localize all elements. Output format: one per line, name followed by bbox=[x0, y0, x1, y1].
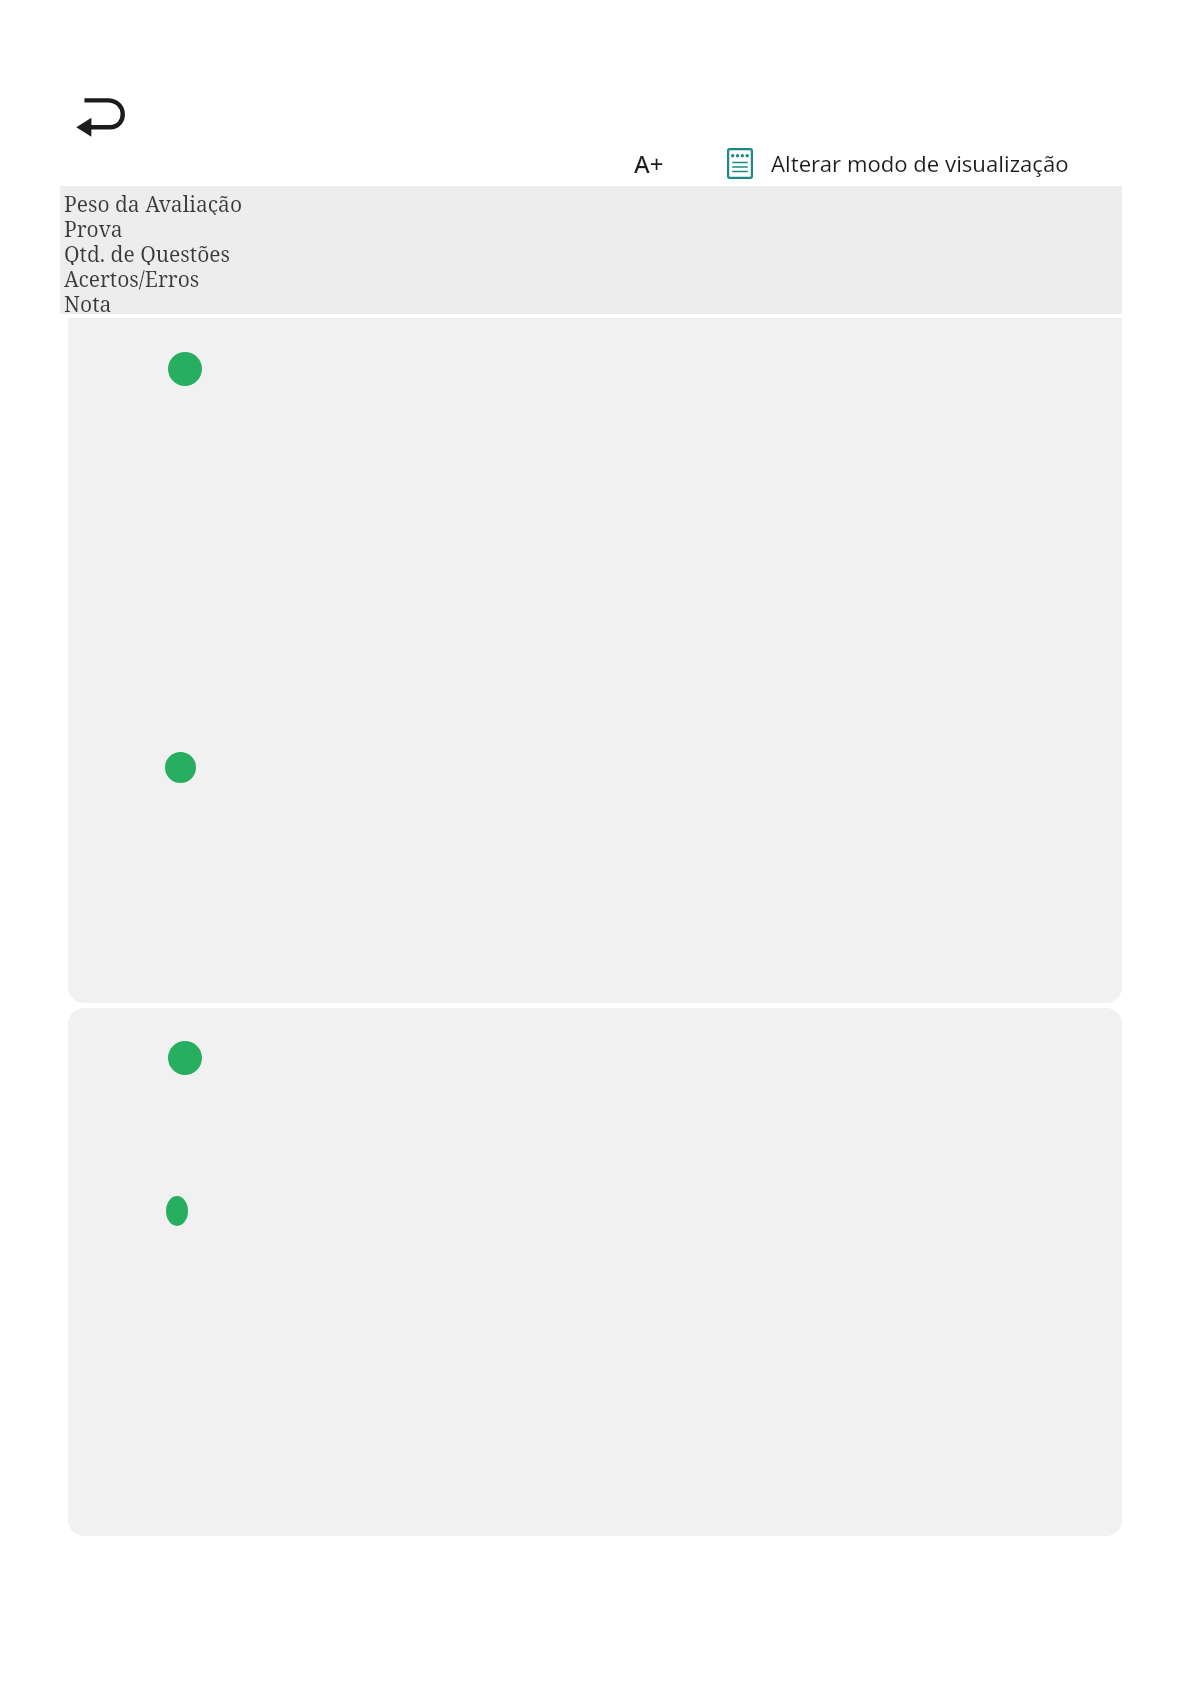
button[interactable]: A+ bbox=[600, 138, 698, 188]
staticText: A+ bbox=[634, 147, 664, 180]
staticText: Acertos/Erros bbox=[64, 265, 200, 290]
button[interactable] bbox=[68, 318, 1122, 1003]
button[interactable]: Voltar bbox=[74, 88, 132, 144]
button[interactable]: Alterar modo de visualização bbox=[705, 138, 1091, 188]
staticText: Nota bbox=[64, 290, 112, 314]
button[interactable] bbox=[68, 1008, 1122, 1536]
staticText: Prova bbox=[64, 215, 123, 240]
staticText: Peso da Avaliação bbox=[64, 190, 242, 215]
staticText: Qtd. de Questões bbox=[64, 240, 231, 265]
staticText: Alterar modo de visualização bbox=[771, 148, 1069, 178]
